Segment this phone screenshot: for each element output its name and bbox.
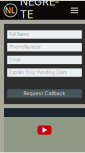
staticText: LAW FIRM [20,21,40,26]
staticText: NL [5,6,16,15]
button[interactable]: Play video [37,125,51,135]
staticText: Explain Your Pending Claim [9,70,67,75]
staticText: Phone Number [9,45,41,50]
staticText: ▶ [42,126,47,134]
staticText: NEGRETE [20,0,59,21]
button[interactable]: Request Callback [7,89,82,98]
button[interactable]: Negrete Law Firm home [3,3,18,18]
staticText: Request Callback [23,90,65,96]
staticText: Full Name [9,32,28,37]
staticText: Email [9,57,20,62]
button[interactable]: Menu [69,4,80,17]
